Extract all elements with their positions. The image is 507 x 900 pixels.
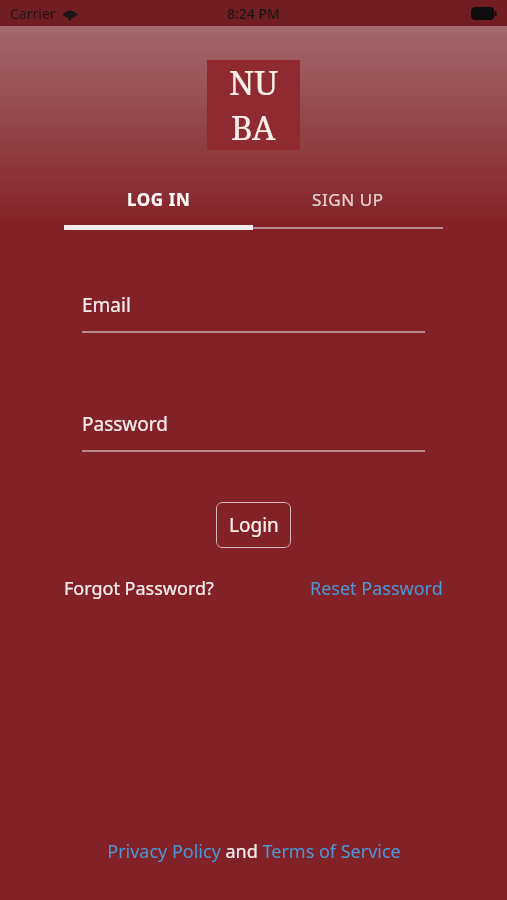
staticText: LOG IN [127, 188, 191, 211]
button[interactable]: Forgot Password? [64, 576, 214, 601]
staticText: NU [229, 60, 278, 105]
button[interactable]: Login [216, 502, 291, 548]
staticText: Forgot Password? [64, 576, 214, 601]
button[interactable]: Password [82, 411, 425, 452]
button[interactable]: Email [82, 292, 425, 333]
button[interactable]: Privacy Policy and Terms of Service [0, 839, 507, 900]
button[interactable]: SIGN UP [253, 184, 443, 214]
staticText: Reset Password [310, 576, 443, 601]
staticText: Login [229, 512, 279, 538]
staticText: Privacy Policy and Terms of Service [107, 839, 401, 864]
staticText: 8:24 PM [227, 4, 280, 23]
staticText: Email [82, 292, 131, 318]
staticText: BA [231, 105, 276, 150]
staticText: Carrier [10, 4, 56, 23]
button[interactable]: LOG IN [64, 184, 253, 214]
staticText: SIGN UP [312, 188, 384, 211]
button[interactable]: Reset Password [310, 576, 443, 601]
staticText: Password [82, 411, 168, 437]
